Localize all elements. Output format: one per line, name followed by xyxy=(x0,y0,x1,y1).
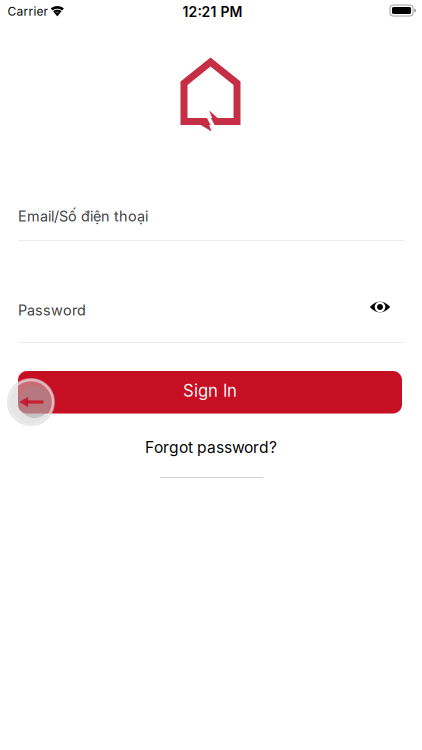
button[interactable]: Back xyxy=(5,376,57,428)
button[interactable]: Password xyxy=(18,301,404,343)
button[interactable]: Show password xyxy=(366,295,394,319)
staticText: 12:21 PM xyxy=(182,3,242,20)
staticText: Sign In xyxy=(183,381,237,401)
staticText: Email/Số điện thoại xyxy=(18,207,148,225)
button[interactable]: Sign In xyxy=(18,371,402,413)
button[interactable]: Email/Số điện thoại xyxy=(18,207,404,241)
staticText: Forgot password? xyxy=(145,438,277,457)
staticText: Carrier xyxy=(7,4,48,18)
button[interactable]: Forgot password? xyxy=(145,438,277,457)
staticText: Password xyxy=(18,301,86,319)
